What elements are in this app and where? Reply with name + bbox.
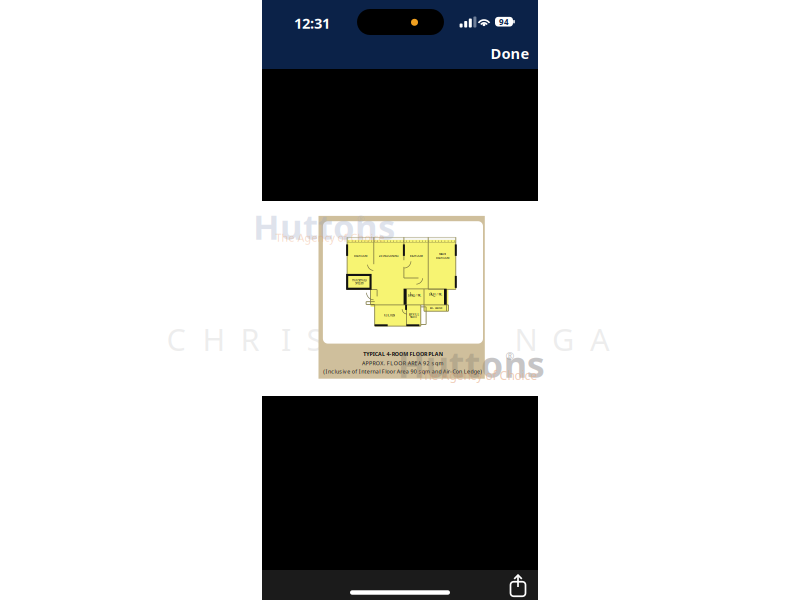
staticText: The Agency of Choice xyxy=(275,230,384,245)
staticText: SHELTER xyxy=(355,281,364,285)
staticText: BEDROOM xyxy=(436,256,449,260)
staticText: ® xyxy=(505,349,514,363)
staticText: ® xyxy=(357,212,365,225)
staticText: BEDROOM xyxy=(354,254,367,258)
staticText: Huttons xyxy=(398,340,545,388)
staticText: H xyxy=(202,319,225,359)
staticText: (Inclusive of Internal Floor Area 90 sqm… xyxy=(323,368,482,375)
staticText: Done xyxy=(490,44,529,63)
staticText: I xyxy=(281,319,291,359)
staticText: TYPICAL 4-ROOM FLOOR PLAN xyxy=(363,350,443,357)
staticText: BATH / WC xyxy=(428,293,442,296)
staticText: KITCHEN xyxy=(384,314,395,317)
staticText: APPROX. FLOOR AREA 92 sqm xyxy=(362,360,443,367)
staticText: AC LEDGE xyxy=(430,306,442,310)
staticText: 94 xyxy=(499,16,509,27)
staticText: SERVICE xyxy=(408,313,418,316)
staticText: E xyxy=(450,319,467,359)
staticText: N xyxy=(514,319,537,359)
staticText: C xyxy=(166,319,185,359)
staticText: BEDROOM xyxy=(409,254,422,258)
staticText: I xyxy=(382,319,392,359)
staticText: MAIN xyxy=(439,252,446,256)
staticText: YARD xyxy=(410,316,417,319)
staticText: ® xyxy=(505,349,514,363)
staticText: Huttons xyxy=(253,203,395,249)
staticText: N xyxy=(412,319,435,359)
staticText: BATH / WC xyxy=(407,294,421,297)
staticText: R xyxy=(240,319,259,359)
staticText: HOUSEHOLD xyxy=(352,278,367,282)
staticText: A xyxy=(590,319,610,359)
staticText: The Agency of Choice xyxy=(417,367,537,383)
staticText: T xyxy=(343,319,360,359)
staticText: 12:31 xyxy=(294,13,330,33)
staticText: LIVING/DINING xyxy=(378,254,398,258)
button[interactable]: Done xyxy=(489,41,531,65)
staticText: The Agency of Choice xyxy=(417,367,537,383)
staticText: Huttons xyxy=(398,340,545,388)
button[interactable]: Share xyxy=(508,573,528,597)
staticText: G xyxy=(552,319,574,359)
staticText: S xyxy=(306,319,323,359)
